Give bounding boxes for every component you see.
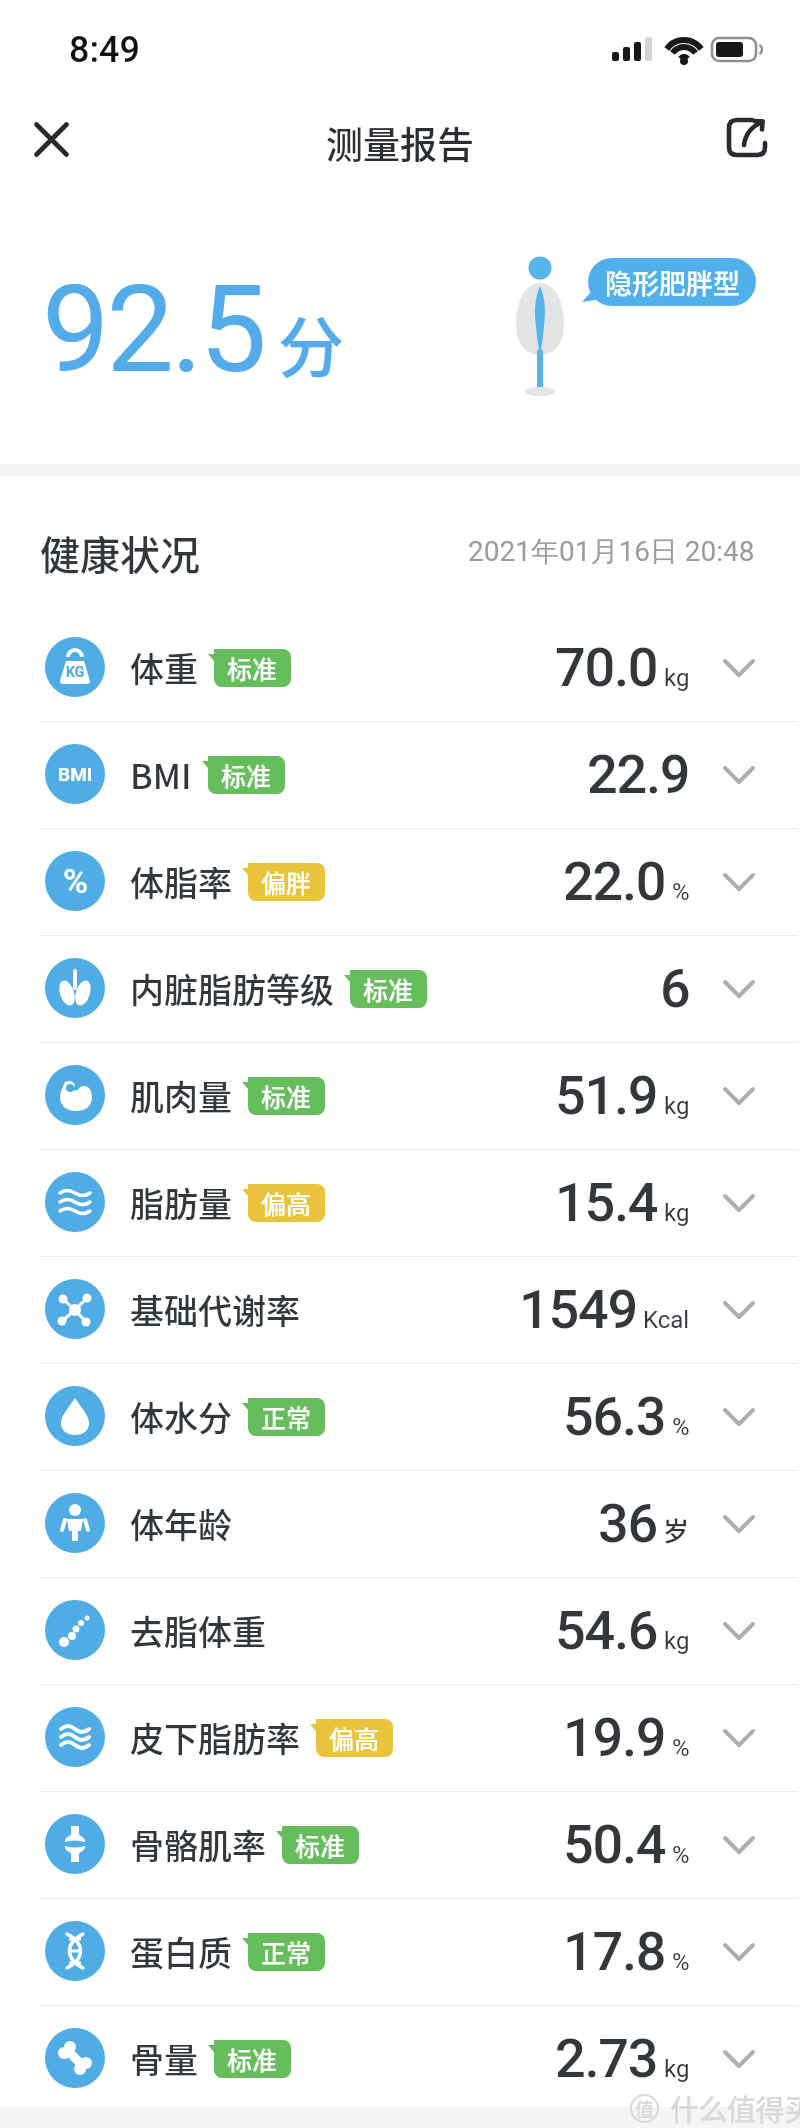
staticText: 2.73 [555, 2027, 658, 2090]
staticText: BMI [130, 750, 192, 799]
staticText: 蛋白质 [130, 1927, 232, 1976]
button[interactable]: 内脏脂肪等级 [0, 935, 800, 1042]
staticText: 17.8 [563, 1920, 666, 1983]
staticText: 正常 [261, 1934, 312, 1970]
button[interactable]: 骨骼肌率 [0, 1791, 800, 1898]
staticText: KG [66, 664, 85, 680]
staticText: 标准 [227, 650, 278, 686]
staticText: 2021年01月16日 20:48 [468, 534, 755, 569]
button[interactable]: 皮下脂肪率 [0, 1684, 800, 1791]
staticText: 骨骼肌率 [130, 1820, 266, 1869]
staticText: kg [664, 1199, 690, 1227]
staticText: Kcal [643, 1306, 690, 1334]
staticText: 1549 [519, 1278, 637, 1341]
staticText: 标准 [363, 971, 414, 1007]
staticText: 偏高 [329, 1720, 380, 1756]
button[interactable]: 体年龄 [0, 1470, 800, 1577]
button[interactable]: 基础代谢率 [0, 1256, 800, 1363]
staticText: % [63, 861, 88, 901]
staticText: 脂肪量 [130, 1178, 232, 1227]
staticText: 偏胖 [261, 864, 312, 900]
staticText: 偏高 [261, 1185, 312, 1221]
button[interactable]: 脂肪量 [0, 1149, 800, 1256]
staticText: 皮下脂肪率 [130, 1713, 300, 1762]
staticText: 标准 [295, 1827, 346, 1863]
staticText: 正常 [261, 1399, 312, 1435]
staticText: 基础代谢率 [130, 1285, 300, 1334]
staticText: % [672, 1734, 690, 1762]
staticText: 标准 [221, 757, 272, 793]
staticText: 51.9 [555, 1064, 658, 1127]
button[interactable]: 去脂体重 [0, 1577, 800, 1684]
staticText: 去脂体重 [130, 1606, 266, 1655]
button[interactable]: 骨量 [0, 2005, 800, 2112]
staticText: 70.0 [555, 636, 658, 699]
staticText: kg [664, 664, 690, 692]
button[interactable]: 肌肉量 [0, 1042, 800, 1149]
staticText: 8:49 [69, 29, 140, 71]
staticText: % [672, 1413, 690, 1441]
staticText: 体水分 [130, 1392, 232, 1441]
staticText: 22.0 [563, 850, 666, 913]
staticText: 肌肉量 [130, 1071, 232, 1120]
button[interactable] [716, 106, 780, 170]
button[interactable] [26, 114, 76, 164]
staticText: kg [664, 2055, 690, 2083]
staticText: kg [664, 1092, 690, 1120]
staticText: 标准 [261, 1078, 312, 1114]
staticText: 体年龄 [130, 1499, 232, 1548]
staticText: % [672, 1841, 690, 1869]
staticText: 6 [660, 957, 690, 1020]
staticText: 体重 [130, 643, 198, 692]
staticText: 分 [278, 295, 344, 391]
staticText: % [672, 878, 690, 906]
staticText: % [672, 1948, 690, 1976]
staticText: 骨量 [130, 2034, 198, 2083]
staticText: 岁 [663, 1511, 690, 1549]
staticText: BMI [58, 763, 93, 785]
staticText: 内脏脂肪等级 [130, 964, 334, 1013]
staticText: 健康状况 [40, 524, 200, 582]
staticText: 值 [635, 2095, 655, 2123]
staticText: 56.3 [563, 1385, 666, 1448]
button[interactable]: 蛋白质 [0, 1898, 800, 2005]
button[interactable]: KG [0, 614, 800, 721]
staticText: kg [664, 1627, 690, 1655]
staticText: 测量报告 [326, 116, 474, 170]
button[interactable]: % [0, 828, 800, 935]
staticText: 54.6 [555, 1599, 658, 1662]
staticText: 隐形肥胖型 [605, 263, 740, 302]
staticText: 50.4 [563, 1813, 666, 1876]
staticText: 36 [598, 1492, 657, 1555]
staticText: 92.5 [42, 260, 264, 401]
staticText: 体脂率 [130, 857, 232, 906]
staticText: 15.4 [555, 1171, 658, 1234]
staticText: 什么值得买 [670, 2087, 800, 2128]
staticText: 19.9 [563, 1706, 666, 1769]
staticText: 22.9 [587, 743, 690, 806]
button[interactable]: BMI [0, 721, 800, 828]
button[interactable]: 体水分 [0, 1363, 800, 1470]
staticText: 标准 [227, 2041, 278, 2077]
